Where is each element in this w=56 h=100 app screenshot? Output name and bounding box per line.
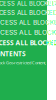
staticText: ACCESS ALL BLOCKED — [0, 38, 56, 47]
staticText: ACCESS ALL BLOCKED — [0, 9, 56, 16]
staticText: Unblock Geo-restricted Content, — [0, 60, 46, 65]
staticText: ACCESS ALL BLOCKED — [0, 18, 56, 26]
staticText: CONTENTS — [0, 49, 26, 58]
staticText: ACCESS ALL BLOCKED — [0, 28, 56, 36]
staticText: ACCESS ALL BLOCKED — [0, 0, 56, 7]
